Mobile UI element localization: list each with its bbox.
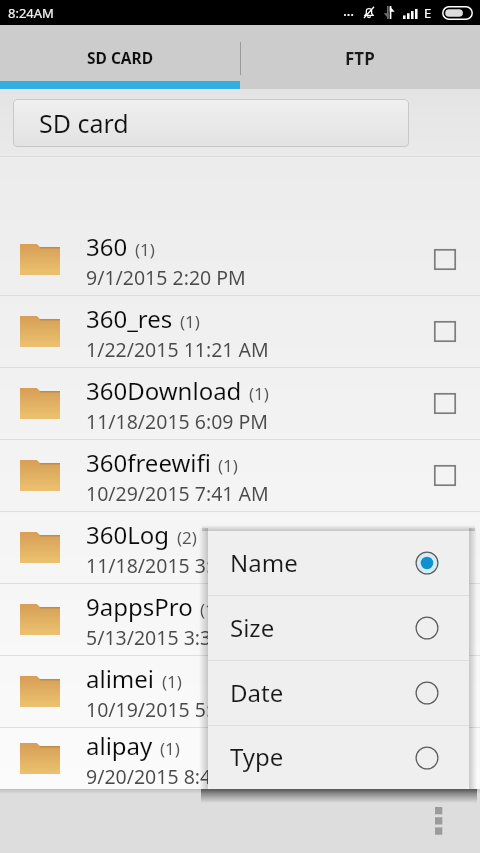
button[interactable]: Select 360Download [410,368,480,439]
staticText: alimei [86,662,155,695]
staticText: 360Download [86,374,242,407]
staticText: 11/18/2015 6:09 PM [86,408,269,435]
staticText: 9appsPro [86,590,193,623]
button[interactable]: Select alipay [410,728,480,789]
staticText: 9/20/2015 8:46 AM [86,763,258,790]
button[interactable]: alipay [0,728,480,789]
button[interactable]: alimei [0,656,480,727]
staticText: 11/18/2015 3:55 PM [86,552,269,579]
staticText: 8:24AM [8,4,54,22]
staticText: … [343,1,355,20]
button[interactable]: Select 360Log [410,512,480,583]
staticText: (1) [249,382,269,405]
staticText: FTP [345,47,375,70]
button[interactable]: Size [208,596,469,660]
button[interactable]: 360Download [0,368,480,439]
staticText: 5/13/2015 3:34 PM [86,624,257,651]
button[interactable]: 9appsPro [0,584,480,655]
button[interactable]: 360 [0,224,480,295]
button[interactable]: Select alimei [410,656,480,727]
staticText: (1) [200,598,220,621]
staticText: 360 [86,230,128,263]
staticText: 360freewifi [86,446,211,479]
staticText: 9/1/2015 2:20 PM [86,264,246,291]
staticText: SD card [39,106,129,140]
button[interactable]: Name [208,531,469,595]
staticText: 360_res [86,302,173,335]
staticText: (1) [162,670,182,693]
staticText: alipay [86,729,153,762]
button[interactable]: Select 9appsPro [410,584,480,655]
staticText: Type [230,740,284,773]
button[interactable]: SD card [13,99,409,147]
staticText: (1) [160,737,180,760]
button[interactable]: Date [208,661,469,725]
button[interactable]: Select 360freewifi [410,440,480,511]
staticText: E [424,4,432,22]
staticText: 10/19/2015 5:33 PM [86,696,269,723]
button[interactable]: 360_res [0,296,480,367]
button[interactable]: Select 360_res [410,296,480,367]
button[interactable]: 360freewifi [0,440,480,511]
staticText: (1) [180,310,200,333]
staticText: (1) [135,238,155,261]
button[interactable]: More options [415,798,461,844]
staticText: 1/22/2015 11:21 AM [86,336,269,363]
staticText: (2) [177,526,197,549]
button[interactable]: 360Log [0,512,480,583]
staticText: Date [230,676,284,709]
button[interactable]: FTP [240,25,480,89]
button[interactable]: Select 360 [410,224,480,295]
button[interactable]: Type [208,726,469,789]
staticText: (1) [218,454,238,477]
staticText: Name [230,546,298,579]
staticText: 10/29/2015 7:41 AM [86,480,269,507]
staticText: SD CARD [87,47,154,68]
staticText: 360Log [86,518,170,551]
staticText: Size [230,611,275,644]
button[interactable]: SD CARD [0,25,240,89]
